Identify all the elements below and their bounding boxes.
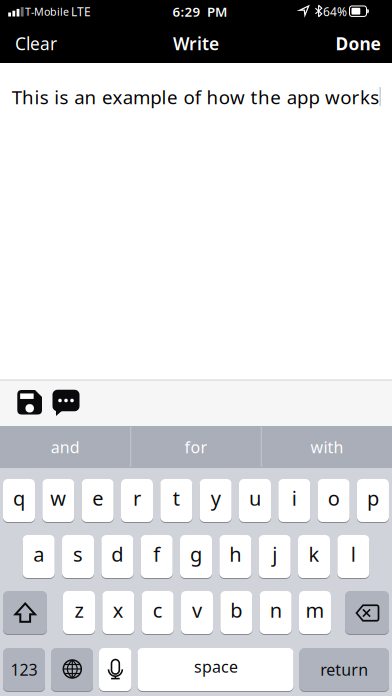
staticText: This is an example of how the app works — [12, 85, 379, 109]
staticText: with — [310, 436, 343, 458]
staticText: u — [249, 485, 261, 511]
staticText: a — [33, 541, 44, 567]
staticText: w — [50, 485, 66, 511]
staticText: p — [367, 485, 379, 511]
staticText: LTE — [71, 4, 91, 19]
staticText: space — [194, 656, 238, 677]
staticText: Write — [173, 32, 219, 55]
staticText: i — [292, 485, 297, 511]
staticText: and — [51, 436, 80, 458]
staticText: d — [111, 541, 123, 567]
staticText: n — [270, 597, 282, 623]
staticText: PM — [207, 3, 227, 20]
staticText: h — [229, 541, 241, 567]
staticText: l — [351, 541, 356, 567]
staticText: Done — [335, 32, 380, 55]
staticText: 123 — [10, 659, 37, 680]
staticText: k — [308, 541, 319, 567]
staticText: x — [113, 597, 124, 623]
staticText: 6:29 — [172, 3, 200, 20]
staticText: 64% — [323, 4, 347, 19]
staticText: c — [153, 597, 163, 623]
staticText: return — [320, 659, 368, 680]
staticText: t — [173, 485, 180, 511]
staticText: g — [190, 541, 202, 567]
staticText: f — [153, 541, 160, 567]
staticText: T-Mobile — [25, 4, 69, 19]
staticText: m — [305, 597, 324, 623]
staticText: b — [230, 597, 242, 623]
staticText: e — [92, 485, 103, 511]
staticText: v — [192, 597, 202, 623]
staticText: q — [13, 485, 25, 511]
staticText: o — [328, 485, 340, 511]
staticText: j — [272, 541, 277, 567]
staticText: z — [74, 597, 83, 623]
staticText: Clear — [15, 32, 57, 55]
staticText: for — [184, 436, 207, 458]
staticText: s — [73, 541, 83, 567]
staticText: r — [133, 485, 141, 511]
staticText: y — [211, 485, 221, 511]
